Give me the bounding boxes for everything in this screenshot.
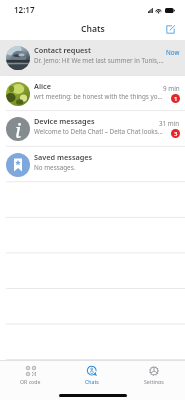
button[interactable]: QR code — [0, 361, 61, 384]
button[interactable]: New chat — [162, 21, 178, 37]
button[interactable]: i — [0, 111, 185, 147]
staticText: 12:17 — [14, 4, 35, 15]
button[interactable]: Chats — [61, 361, 123, 384]
staticText: Welcome to Delta Chat! – Delta Chat look… — [34, 127, 164, 136]
staticText: Chats — [81, 23, 105, 35]
button[interactable]: Saved messages — [0, 147, 185, 183]
staticText: Contact request — [34, 45, 91, 55]
button[interactable]: Settings — [123, 361, 185, 384]
staticText: 1 — [174, 95, 178, 103]
staticText: wrt meeting: be honest with the things y… — [34, 92, 164, 101]
staticText: 31 min — [159, 119, 180, 128]
staticText: Chats — [85, 378, 99, 384]
staticText: Dr. Jemo: Hi! We met last summer in Tuni… — [34, 56, 164, 65]
staticText: i — [15, 117, 22, 141]
staticText: Alice — [34, 81, 51, 91]
button[interactable]: Alice — [0, 76, 185, 112]
staticText: QR code — [20, 378, 41, 384]
staticText: 9 min — [163, 84, 180, 93]
staticText: No messages. — [34, 163, 76, 172]
staticText: Now — [166, 48, 180, 57]
staticText: Device messages — [34, 116, 95, 126]
staticText: 3 — [174, 130, 178, 138]
button[interactable]: Contact request — [0, 40, 185, 76]
staticText: Saved messages — [34, 152, 93, 162]
staticText: Settings — [144, 378, 164, 384]
